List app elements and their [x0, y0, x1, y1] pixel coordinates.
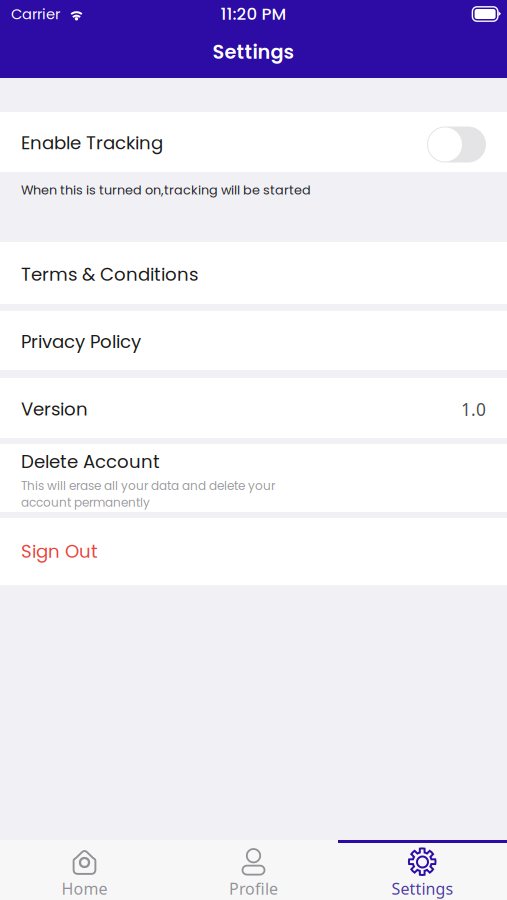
staticText: Settings — [212, 38, 294, 66]
staticText: Carrier — [11, 4, 60, 24]
button[interactable]: Enable Tracking — [0, 112, 507, 172]
staticText: Home — [61, 878, 107, 899]
button[interactable]: Home — [0, 840, 169, 900]
staticText: This will erase all your data and delete… — [21, 477, 275, 511]
staticText: 11:20 PM — [220, 2, 286, 26]
button[interactable]: Terms & Conditions — [0, 242, 507, 304]
button[interactable]: Privacy Policy — [0, 311, 507, 370]
button[interactable]: Settings — [338, 840, 507, 900]
button[interactable]: Sign Out — [0, 518, 507, 585]
button[interactable]: Profile — [169, 840, 338, 900]
button[interactable]: Version — [0, 378, 507, 438]
staticText: Settings — [391, 878, 453, 899]
staticText: Version — [21, 396, 88, 422]
staticText: When this is turned on,tracking will be … — [21, 181, 311, 199]
staticText: 1.0 — [461, 398, 486, 421]
staticText: Profile — [229, 878, 278, 899]
staticText: Enable Tracking — [21, 130, 163, 156]
staticText: Sign Out — [21, 539, 98, 564]
staticText: Terms & Conditions — [21, 262, 198, 287]
staticText: Delete Account — [21, 449, 160, 474]
button[interactable]: Delete Account — [0, 444, 507, 512]
staticText: Privacy Policy — [21, 329, 141, 354]
